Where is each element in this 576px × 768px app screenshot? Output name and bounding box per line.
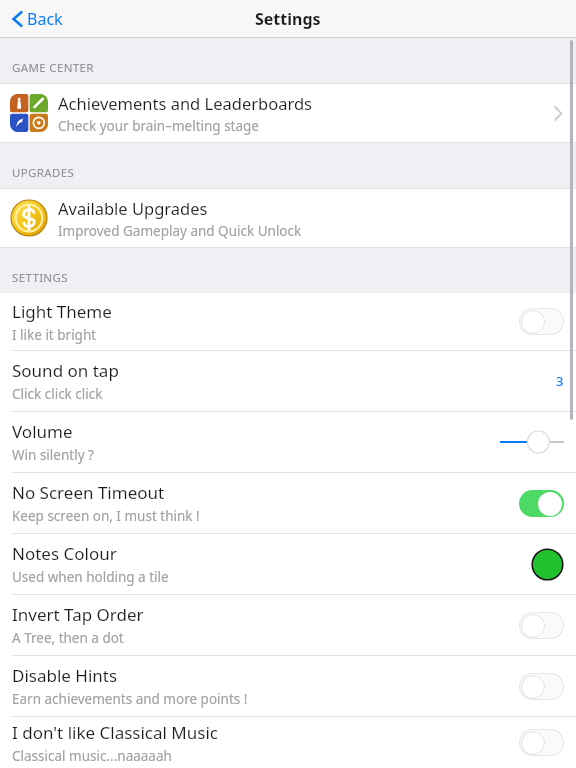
staticText: Sound on tap xyxy=(12,359,119,382)
button[interactable]: Toggle off xyxy=(520,674,563,699)
staticText: SETTINGS xyxy=(12,270,68,286)
staticText: No Screen Timeout xyxy=(12,481,165,504)
button[interactable]: Toggle on xyxy=(519,490,564,517)
button[interactable]: Notes Colour xyxy=(0,533,576,594)
staticText: Invert Tap Order xyxy=(12,603,144,626)
staticText: Disable Hints xyxy=(12,664,118,687)
button[interactable]: Invert Tap Order xyxy=(0,594,576,655)
staticText: Settings xyxy=(255,8,321,30)
button[interactable]: Available Upgrades xyxy=(0,188,576,248)
staticText: Achievements and Leaderboards xyxy=(58,92,312,114)
staticText: Click click click xyxy=(12,385,103,403)
button[interactable]: Toggle off xyxy=(520,730,563,755)
staticText: Keep screen on, I must think ! xyxy=(12,507,200,525)
staticText: I like it bright xyxy=(12,326,97,344)
button[interactable]: Notes colour xyxy=(531,548,564,581)
button[interactable]: Toggle off xyxy=(520,613,563,638)
staticText: Notes Colour xyxy=(12,542,117,565)
button[interactable]: Toggle off xyxy=(520,309,563,334)
staticText: Light Theme xyxy=(12,300,112,323)
staticText: I don't like Classical Music xyxy=(12,721,218,744)
button[interactable]: I don't like Classical Music xyxy=(0,716,576,768)
staticText: Earn achievements and more points ! xyxy=(12,690,248,708)
staticText: 3 xyxy=(556,372,564,390)
staticText: Win silently ? xyxy=(12,446,94,464)
staticText: Volume xyxy=(12,420,73,443)
button[interactable]: Disable Hints xyxy=(0,655,576,716)
staticText: UPGRADES xyxy=(12,165,75,181)
button[interactable]: Achievements and Leaderboards xyxy=(0,83,576,143)
button[interactable]: Back xyxy=(8,4,67,34)
staticText: Available Upgrades xyxy=(58,197,208,219)
button[interactable]: Sound on tap xyxy=(0,350,576,411)
staticText: Back xyxy=(27,8,63,30)
staticText: A Tree, then a dot xyxy=(12,629,124,647)
button[interactable]: Light Theme xyxy=(0,293,576,350)
staticText: Check your brain–melting stage xyxy=(58,117,259,135)
button[interactable] xyxy=(500,427,564,457)
staticText: GAME CENTER xyxy=(12,60,94,76)
button[interactable]: Volume xyxy=(0,411,576,472)
staticText: Improved Gameplay and Quick Unlock xyxy=(58,222,302,240)
staticText: Used when holding a tile xyxy=(12,568,169,586)
staticText: Classical music...naaaaah xyxy=(12,747,172,765)
button[interactable]: No Screen Timeout xyxy=(0,472,576,533)
